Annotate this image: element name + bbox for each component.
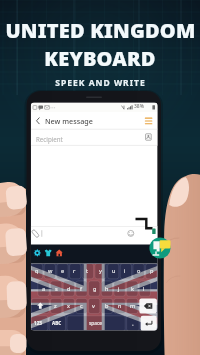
staticText: h — [105, 285, 109, 293]
staticText: l — [143, 285, 145, 293]
staticText: Recipient — [36, 135, 63, 143]
staticText: y — [99, 267, 102, 275]
staticText: f — [80, 285, 82, 293]
staticText: j — [118, 285, 120, 293]
staticText: k — [131, 285, 134, 293]
staticText: SPEEK AND WRITE — [55, 77, 146, 89]
staticText: 38% — [134, 103, 144, 110]
staticText: z — [54, 302, 57, 310]
staticText: KEYBOARD — [44, 45, 156, 72]
staticText: u — [112, 267, 116, 275]
staticText: b — [105, 302, 109, 310]
staticText: w — [48, 267, 53, 275]
staticText: o — [137, 267, 141, 275]
staticText: g — [93, 285, 97, 293]
staticText: q — [35, 267, 39, 275]
staticText: i — [124, 267, 126, 275]
staticText: x — [67, 302, 70, 310]
staticText: t — [86, 267, 89, 275]
staticText: New message — [45, 116, 93, 126]
staticText: e — [61, 267, 65, 275]
staticText: a — [42, 285, 46, 293]
staticText: UNITED KINGDOM — [5, 17, 196, 44]
staticText: s — [55, 285, 58, 293]
staticText: v — [92, 302, 95, 310]
staticText: n — [118, 302, 122, 310]
staticText: r — [73, 267, 76, 275]
staticText: ABC — [52, 320, 62, 326]
staticText: space — [89, 320, 102, 327]
staticText: c — [80, 302, 83, 310]
staticText: 123 — [34, 320, 42, 326]
staticText: d — [67, 285, 71, 293]
staticText: m — [130, 302, 136, 310]
staticText: p — [150, 267, 154, 275]
